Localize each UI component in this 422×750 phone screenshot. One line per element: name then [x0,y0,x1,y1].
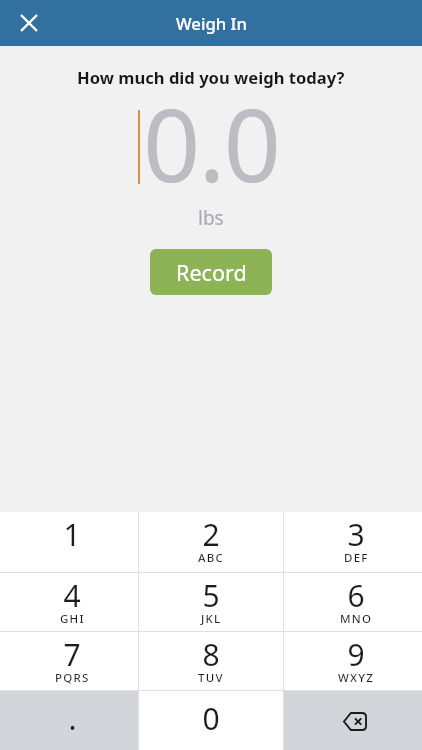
staticText: 8 [202,634,220,675]
staticText: 4 [63,575,81,616]
staticText: 3 [347,514,365,555]
staticText: 0 [202,698,220,739]
button[interactable]: 5 [139,573,283,631]
staticText: WXYZ [338,670,375,686]
button[interactable]: . [0,691,138,750]
button[interactable]: 4 [0,573,138,631]
staticText: PQRS [55,670,90,686]
staticText: GHI [60,611,85,627]
button[interactable]: Backspace [284,691,422,750]
staticText: 9 [347,634,365,675]
button[interactable]: 6 [284,573,422,631]
button[interactable]: 9 [284,632,422,690]
button[interactable]: 1 [0,512,138,572]
staticText: . [68,698,77,739]
button[interactable]: Record [150,249,272,295]
staticText: DEF [344,550,369,566]
staticText: 5 [202,575,220,616]
staticText: TUV [198,670,224,686]
button[interactable]: 7 [0,632,138,690]
staticText: MNO [340,611,373,627]
button[interactable]: 3 [284,512,422,572]
staticText: lbs [198,205,224,231]
staticText: Weigh In [176,12,247,35]
button[interactable]: Close [9,3,49,43]
button[interactable]: 2 [139,512,283,572]
staticText: 6 [347,575,365,616]
button[interactable]: 8 [139,632,283,690]
staticText: Record [176,258,247,287]
staticText: ABC [198,550,225,566]
staticText: 7 [63,634,81,675]
button[interactable]: 0 [139,691,283,750]
staticText: How much did you weigh today? [77,66,345,89]
staticText: JKL [201,611,222,627]
staticText: 1 [63,514,81,555]
staticText: 0.0 [143,75,280,211]
staticText: 2 [202,514,220,555]
